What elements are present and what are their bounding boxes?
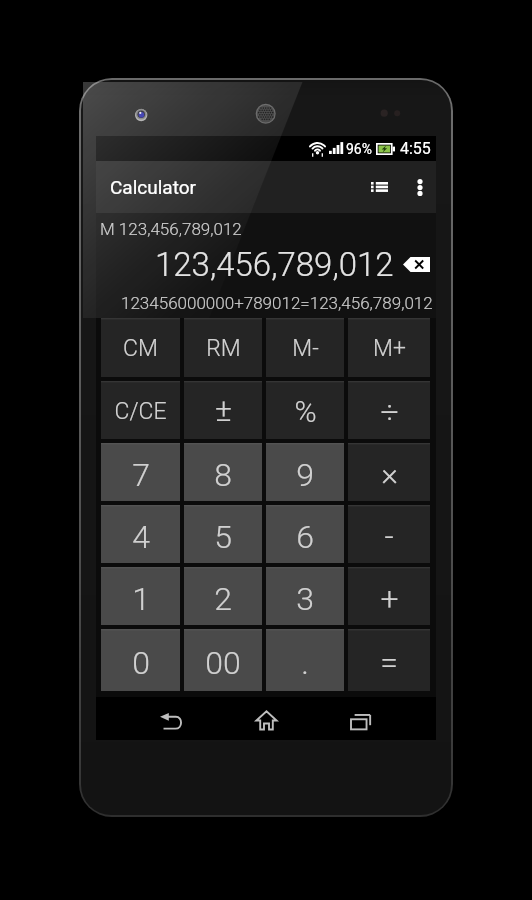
button[interactable]: + [348, 567, 430, 625]
button[interactable]: More options [403, 161, 436, 213]
button[interactable]: 9 [266, 443, 344, 501]
staticText: . [301, 644, 309, 682]
staticText: % [294, 394, 317, 429]
staticText: ± [215, 391, 232, 429]
button[interactable]: 0 [101, 629, 180, 691]
staticText: M 123,456,789,012 [100, 219, 242, 239]
staticText: 4 [132, 518, 150, 556]
staticText: 5 [214, 518, 232, 556]
button[interactable]: × [348, 443, 430, 501]
button[interactable]: 00 [184, 629, 262, 691]
staticText: CM [123, 335, 158, 362]
button[interactable]: Home [242, 697, 290, 740]
staticText: 2 [214, 580, 232, 618]
button[interactable]: RM [184, 318, 262, 377]
staticText: 1 [132, 580, 150, 618]
staticText: Calculator [110, 176, 197, 198]
staticText: + [380, 580, 399, 618]
staticText: 123456000000+789012=123,456,789,012 [121, 293, 433, 313]
button[interactable]: = [348, 629, 430, 691]
button[interactable]: 7 [101, 443, 180, 501]
button[interactable]: 4 [101, 505, 180, 563]
button[interactable]: CM [101, 318, 180, 377]
staticText: C/CE [114, 398, 167, 425]
staticText: 123,456,789,012 [155, 245, 394, 284]
staticText: 7 [132, 456, 150, 494]
staticText: M+ [373, 335, 406, 362]
staticText: 8 [214, 456, 232, 494]
button[interactable]: 3 [266, 567, 344, 625]
button[interactable]: 2 [184, 567, 262, 625]
staticText: = [380, 643, 398, 681]
button[interactable]: M- [266, 318, 344, 377]
button[interactable]: History [355, 161, 403, 213]
button[interactable]: ÷ [348, 381, 430, 439]
button[interactable]: Back [147, 697, 195, 740]
button[interactable]: Backspace [403, 257, 430, 272]
button[interactable]: . [266, 629, 344, 691]
staticText: 0 [132, 644, 150, 682]
button[interactable]: 8 [184, 443, 262, 501]
button[interactable]: C/CE [101, 381, 180, 439]
staticText: M- [292, 335, 319, 362]
staticText: ÷ [380, 393, 399, 431]
staticText: 96% [346, 141, 372, 157]
staticText: 4:55 [400, 139, 431, 158]
staticText: 00 [205, 644, 241, 682]
button[interactable]: ± [184, 381, 262, 439]
staticText: - [384, 517, 394, 555]
staticText: 3 [296, 580, 314, 618]
staticText: 6 [296, 518, 314, 556]
button[interactable]: M+ [348, 318, 430, 377]
button[interactable]: % [266, 381, 344, 439]
staticText: RM [206, 335, 241, 362]
staticText: × [381, 455, 398, 493]
button[interactable]: 6 [266, 505, 344, 563]
button[interactable]: - [348, 505, 430, 563]
button[interactable]: 1 [101, 567, 180, 625]
button[interactable]: Recent apps [336, 697, 384, 740]
staticText: 9 [296, 456, 314, 494]
button[interactable]: 5 [184, 505, 262, 563]
